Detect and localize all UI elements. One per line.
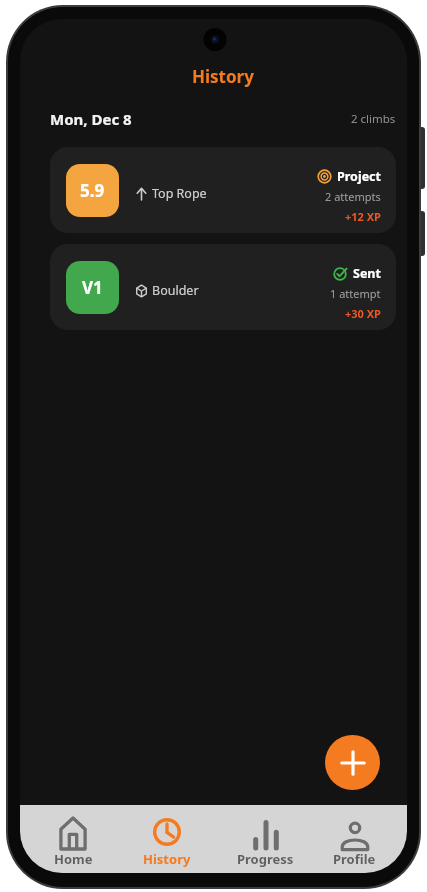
button[interactable]: Home: [20, 805, 116, 873]
staticText: Progress: [237, 850, 294, 868]
staticText: Mon, Dec 8: [50, 109, 132, 129]
staticText: 2 climbs: [351, 111, 396, 127]
button[interactable]: V1: [50, 244, 396, 330]
button[interactable]: History: [116, 805, 213, 873]
button[interactable]: Progress: [213, 805, 310, 873]
staticText: +30 XP: [345, 306, 381, 321]
staticText: V1: [82, 276, 103, 299]
staticText: 2 attempts: [325, 189, 381, 204]
staticText: History: [192, 65, 254, 88]
staticText: Home: [54, 850, 93, 868]
staticText: 1 attempt: [330, 286, 381, 301]
staticText: +12 XP: [345, 209, 381, 224]
staticText: 5.9: [80, 179, 105, 202]
staticText: Top Rope: [152, 185, 207, 202]
staticText: Sent: [353, 265, 381, 282]
staticText: Project: [337, 168, 381, 185]
button[interactable]: Profile: [310, 805, 407, 873]
staticText: History: [143, 850, 191, 868]
staticText: Boulder: [152, 282, 199, 299]
button[interactable]: [325, 735, 380, 790]
button[interactable]: 5.9: [50, 147, 396, 233]
staticText: Profile: [333, 850, 376, 868]
